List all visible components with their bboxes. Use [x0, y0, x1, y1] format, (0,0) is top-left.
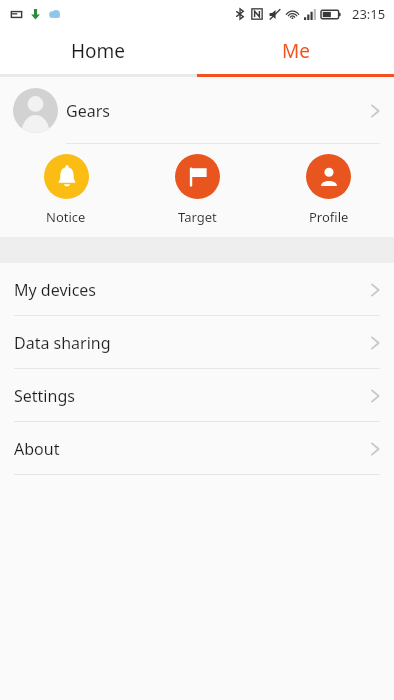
button[interactable]: Notice — [0, 144, 132, 237]
button[interactable]: My devices — [0, 263, 394, 316]
button[interactable]: Home — [0, 28, 197, 74]
staticText: 23:15 — [352, 5, 386, 23]
staticText: Me — [282, 38, 310, 64]
staticText: About — [14, 438, 60, 460]
staticText: Gears — [66, 100, 110, 122]
button[interactable]: Gears — [0, 77, 394, 144]
button[interactable]: Me — [197, 28, 394, 74]
staticText: Settings — [14, 385, 75, 407]
button[interactable]: Target — [132, 144, 263, 237]
staticText: Notice — [46, 208, 86, 226]
button[interactable]: About — [0, 422, 394, 475]
staticText: Home — [71, 38, 126, 64]
button[interactable]: Data sharing — [0, 316, 394, 369]
staticText: My devices — [14, 279, 97, 301]
staticText: Target — [178, 208, 217, 226]
button[interactable]: Profile — [263, 144, 394, 237]
staticText: Data sharing — [14, 332, 111, 354]
button[interactable]: Settings — [0, 369, 394, 422]
staticText: Profile — [309, 208, 349, 226]
